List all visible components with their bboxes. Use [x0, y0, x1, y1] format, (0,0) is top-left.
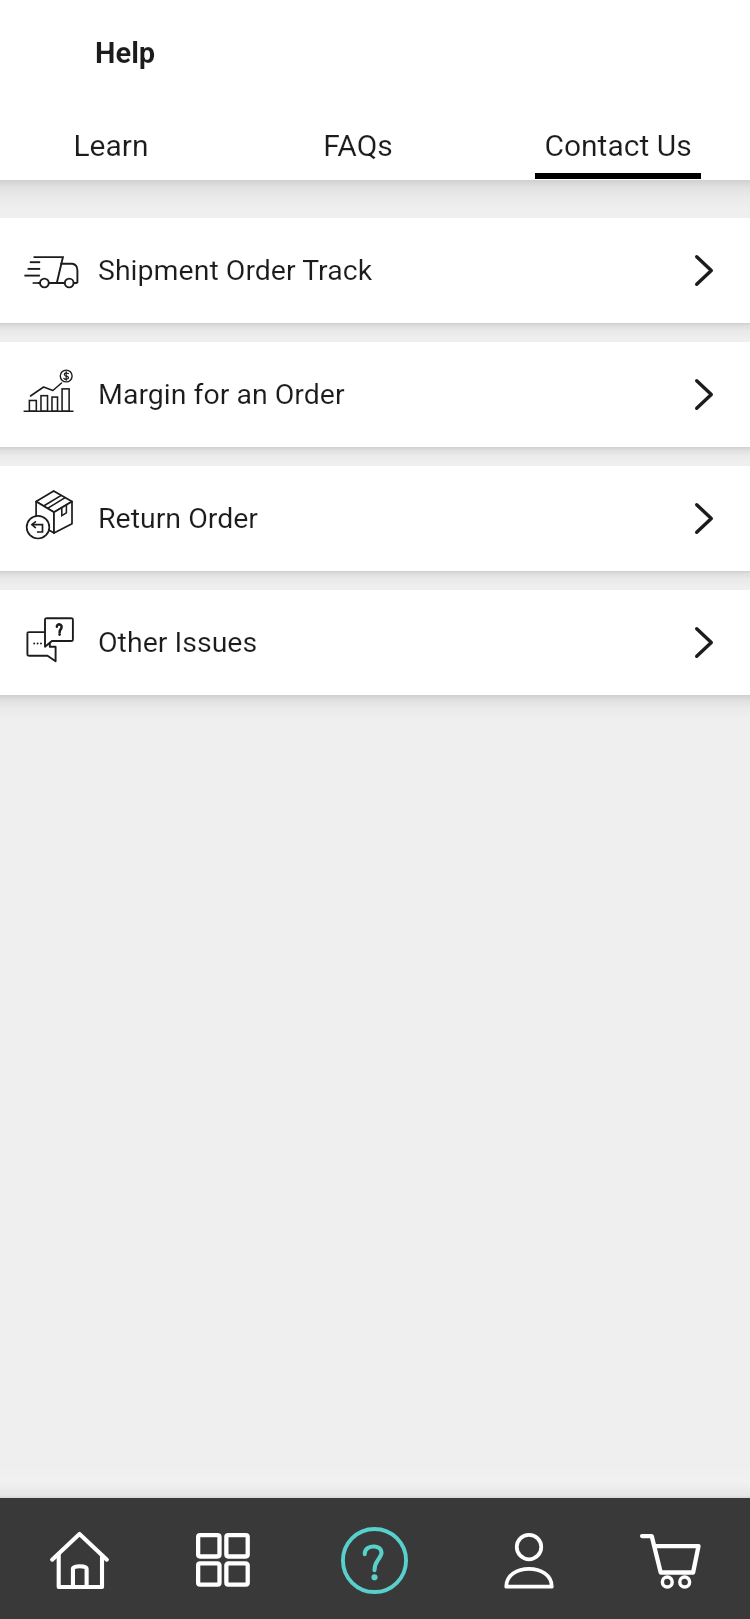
- button[interactable]: Margin for an Order: [0, 342, 750, 447]
- button[interactable]: Account: [450, 1498, 600, 1619]
- button[interactable]: Shipment Order Track: [0, 218, 750, 323]
- staticText: Learn: [73, 128, 149, 163]
- button[interactable]: Categories: [150, 1498, 300, 1619]
- button[interactable]: Cart: [600, 1498, 750, 1619]
- staticText: Help: [95, 36, 156, 70]
- staticText: FAQs: [323, 128, 393, 163]
- staticText: Shipment Order Track: [98, 254, 373, 287]
- staticText: Contact Us: [544, 128, 692, 163]
- button[interactable]: Help: [300, 1498, 450, 1619]
- button[interactable]: FAQs: [234, 0, 482, 180]
- button[interactable]: Other Issues: [0, 590, 750, 695]
- staticText: Return Order: [98, 502, 259, 535]
- button[interactable]: Home: [0, 1498, 150, 1619]
- button[interactable]: Return Order: [0, 466, 750, 571]
- button[interactable]: Learn: [0, 0, 235, 180]
- staticText: Margin for an Order: [98, 378, 345, 411]
- staticText: Other Issues: [98, 626, 258, 659]
- button[interactable]: Contact Us: [494, 0, 742, 180]
